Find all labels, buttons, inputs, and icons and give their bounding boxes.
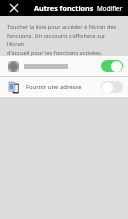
button[interactable]: Apple Pay [0,56,128,76]
button[interactable]: Fournir une adresse [0,77,128,97]
staticText: Toucher la liste pour accéder à l'écran … [7,23,117,31]
staticText: Autres fonctions [34,3,94,13]
button[interactable]: Fermer [6,0,22,16]
button[interactable]: Apple Pay [101,60,123,72]
button[interactable]: Fournir une adresse [101,81,123,93]
staticText: d'accueil pour les fonctions activées. [7,49,103,56]
button[interactable]: Modifier [95,2,125,15]
staticText: fonctions. Un raccourci s'affichera sur … [7,32,121,48]
staticText: Fournir une adresse [26,83,82,91]
staticText: Modifier [97,4,123,13]
